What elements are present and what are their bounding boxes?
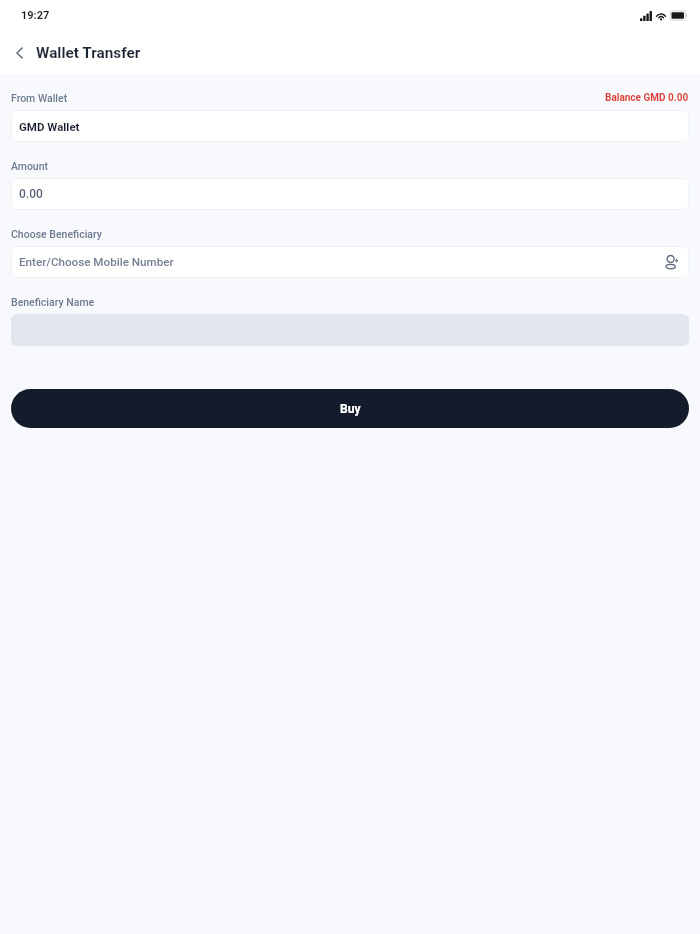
staticText: Amount <box>11 160 49 172</box>
staticText: GMD Wallet <box>19 120 80 133</box>
button[interactable]: Enter/Choose Mobile Number <box>11 246 689 278</box>
staticText: 0.00 <box>19 187 43 201</box>
staticText: Enter/Choose Mobile Number <box>19 255 174 269</box>
button[interactable]: Buy <box>11 389 689 428</box>
button[interactable]: GMD Wallet <box>11 110 689 142</box>
staticText: Wallet Transfer <box>36 44 141 62</box>
staticText: From Wallet <box>11 92 68 104</box>
staticText: Choose Beneficiary <box>11 228 102 240</box>
button[interactable]: Back <box>0 36 36 70</box>
staticText: Buy <box>340 402 361 416</box>
staticText: 19:27 <box>21 9 50 22</box>
staticText: Balance GMD 0.00 <box>605 92 689 104</box>
button[interactable]: 0.00 <box>11 178 689 210</box>
staticText: Beneficiary Name <box>11 296 95 308</box>
button[interactable]: Choose contact <box>657 247 687 277</box>
